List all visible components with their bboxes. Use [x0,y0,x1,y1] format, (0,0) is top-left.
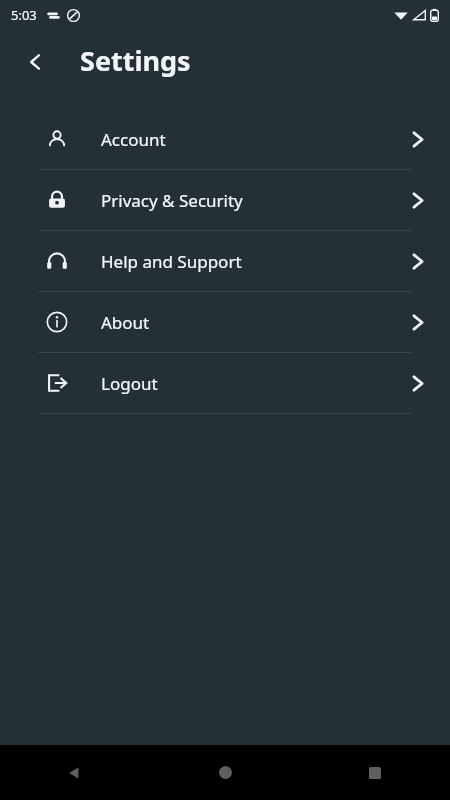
button[interactable]: Privacy & Security [0,170,450,230]
button[interactable]: Recent apps [300,745,450,800]
staticText: Privacy & Security [101,189,243,212]
staticText: Account [101,128,166,151]
button[interactable]: Help and Support [0,231,450,291]
button[interactable]: Back [14,40,58,84]
button[interactable]: Back [0,745,150,800]
staticText: Help and Support [101,250,242,273]
staticText: Logout [101,372,158,395]
button[interactable]: Home [150,745,300,800]
button[interactable]: Account [0,109,450,169]
staticText: 5:03 [11,6,37,24]
button[interactable]: Logout [0,353,450,413]
button[interactable]: About [0,292,450,352]
staticText: Settings [80,42,191,79]
staticText: About [101,311,150,334]
